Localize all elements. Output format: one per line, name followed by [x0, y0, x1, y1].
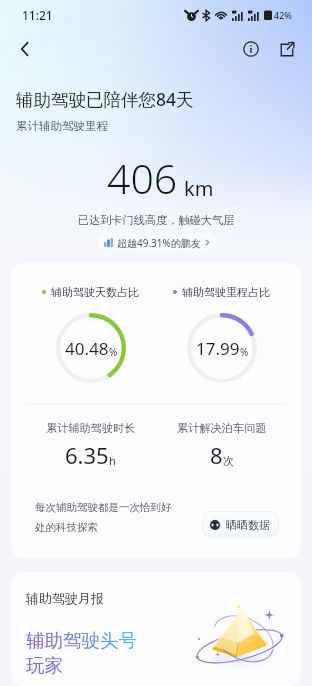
staticText: h	[109, 453, 116, 468]
staticText: 40.48	[65, 337, 109, 360]
staticText: km	[184, 175, 214, 202]
staticText: %	[240, 345, 249, 359]
staticText: 辅助驾驶月报	[26, 590, 104, 606]
button[interactable]: 超越49.31%的鹏友	[97, 234, 216, 251]
staticText: 累计解决泊车问题	[177, 421, 267, 435]
staticText: 辅助驾驶里程占比	[182, 285, 270, 299]
button[interactable]: Share	[272, 34, 302, 64]
staticText: 次	[223, 454, 234, 468]
staticText: 辅助驾驶天数占比	[51, 285, 139, 299]
staticText: 累计辅助驾驶里程	[16, 119, 108, 133]
staticText: 6.35	[65, 440, 109, 470]
button[interactable]: 晒晒数据	[202, 511, 279, 538]
staticText: 17.99	[196, 337, 240, 360]
staticText: 累计辅助驾驶时长	[46, 421, 136, 435]
button[interactable]: Back	[8, 32, 42, 66]
staticText: 辅助驾驶头号 玩家	[26, 629, 137, 678]
staticText: %	[109, 345, 118, 359]
staticText: 42%	[274, 9, 292, 21]
staticText: 已达到卡门线高度，触碰大气层	[0, 213, 312, 227]
staticText: 11:21	[22, 7, 53, 23]
staticText: 406	[107, 150, 178, 206]
button[interactable]: Info	[236, 34, 266, 64]
button[interactable]: 辅助驾驶月报	[11, 572, 301, 686]
staticText: 8	[210, 440, 223, 470]
staticText: 晒晒数据	[226, 518, 270, 532]
staticText: 每次辅助驾驶都是一次恰到好 处的科技探索	[35, 501, 194, 534]
staticText: 辅助驾驶已陪伴您84天	[16, 87, 194, 111]
staticText: 超越49.31%的鹏友	[117, 236, 201, 250]
